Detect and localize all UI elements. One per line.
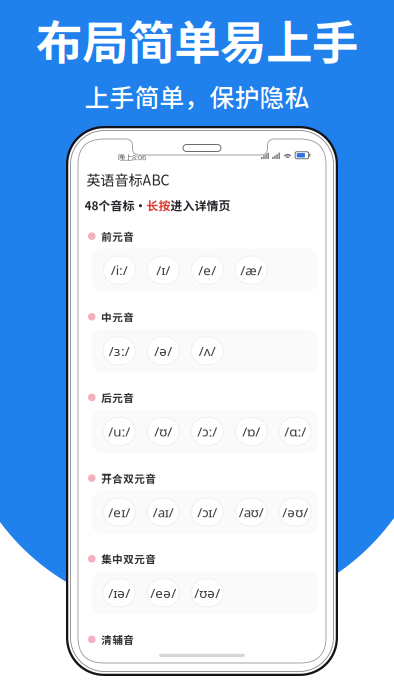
staticText: 集中双元音 bbox=[101, 551, 156, 566]
button[interactable]: /aɪ/ bbox=[147, 498, 179, 526]
staticText: /ɪə/ bbox=[108, 584, 130, 602]
staticText: 中元音 bbox=[101, 309, 134, 324]
staticText: /ɑː/ bbox=[284, 422, 306, 441]
staticText: 英语音标ABC bbox=[86, 169, 169, 189]
staticText: /eɪ/ bbox=[108, 503, 130, 521]
staticText: /ʊ/ bbox=[154, 422, 172, 441]
button[interactable]: /ʊ/ bbox=[147, 417, 179, 445]
button[interactable]: /ɑː/ bbox=[279, 417, 311, 445]
staticText: /uː/ bbox=[108, 422, 130, 441]
button[interactable]: /ɔː/ bbox=[191, 417, 223, 445]
staticText: 布局简单易上手 bbox=[36, 6, 358, 73]
staticText: /ʊə/ bbox=[194, 584, 220, 602]
staticText: /ɒ/ bbox=[242, 422, 260, 441]
staticText: /ʌ/ bbox=[199, 342, 216, 360]
staticText: /ɪ/ bbox=[156, 261, 170, 279]
staticText: /eə/ bbox=[150, 584, 176, 602]
button[interactable]: /eə/ bbox=[147, 579, 179, 607]
staticText: 上手简单，保护隐私 bbox=[84, 78, 309, 114]
staticText: /aɪ/ bbox=[153, 503, 174, 521]
button[interactable]: /ɒ/ bbox=[235, 417, 267, 445]
staticText: /æ/ bbox=[240, 261, 262, 279]
staticText: 48个音标· bbox=[84, 196, 146, 214]
button[interactable]: /ɜː/ bbox=[103, 337, 135, 365]
button[interactable]: /əʊ/ bbox=[279, 498, 311, 526]
staticText: 进入详情页 bbox=[170, 196, 230, 214]
staticText: /ə/ bbox=[154, 342, 172, 360]
button[interactable]: /e/ bbox=[191, 256, 223, 284]
button[interactable]: /ʊə/ bbox=[191, 579, 223, 607]
button[interactable]: /aʊ/ bbox=[235, 498, 267, 526]
staticText: /e/ bbox=[198, 261, 216, 279]
staticText: 清辅音 bbox=[101, 632, 134, 647]
staticText: /iː/ bbox=[111, 261, 128, 279]
button[interactable]: /uː/ bbox=[103, 417, 135, 445]
staticText: /aʊ/ bbox=[239, 503, 264, 521]
button[interactable]: /ɪə/ bbox=[103, 579, 135, 607]
button[interactable]: /ɔɪ/ bbox=[191, 498, 223, 526]
staticText: 晚上8:06 bbox=[118, 151, 146, 162]
button[interactable]: /æ/ bbox=[235, 256, 267, 284]
staticText: 前元音 bbox=[101, 228, 134, 244]
staticText: 长按 bbox=[146, 196, 170, 214]
staticText: /ɔː/ bbox=[197, 422, 217, 441]
button[interactable]: /ʌ/ bbox=[191, 337, 223, 365]
button[interactable]: /iː/ bbox=[103, 256, 135, 284]
button[interactable]: /eɪ/ bbox=[103, 498, 135, 526]
staticText: 开合双元音 bbox=[101, 470, 156, 486]
staticText: 后元音 bbox=[101, 390, 134, 405]
button[interactable]: /ə/ bbox=[147, 337, 179, 365]
button[interactable]: /ɪ/ bbox=[147, 256, 179, 284]
staticText: /ɜː/ bbox=[109, 342, 130, 360]
staticText: /əʊ/ bbox=[282, 503, 308, 521]
staticText: /ɔɪ/ bbox=[197, 503, 217, 521]
